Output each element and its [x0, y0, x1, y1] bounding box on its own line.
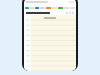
- button[interactable]: [35, 7, 39, 9]
- button[interactable]: [30, 7, 34, 9]
- button[interactable]: [58, 7, 63, 9]
- button[interactable]: [26, 12, 50, 14]
- button[interactable]: [46, 7, 51, 9]
- button[interactable]: Search: [26, 0, 74, 4]
- button[interactable]: [52, 7, 57, 9]
- button[interactable]: [40, 7, 45, 9]
- button[interactable]: [25, 7, 29, 9]
